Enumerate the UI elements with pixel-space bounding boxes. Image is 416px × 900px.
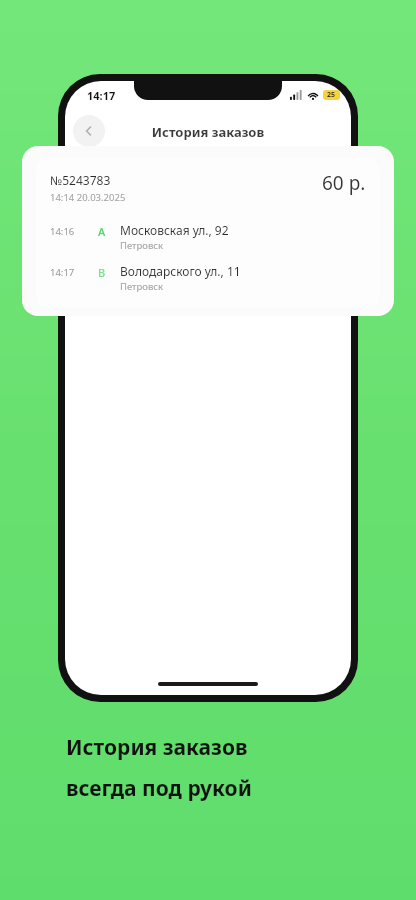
staticText: История заказов <box>65 123 351 141</box>
staticText: 14:14 20.03.2025 <box>50 191 126 204</box>
staticText: Петровск <box>120 239 164 252</box>
staticText: 14:17 <box>50 266 84 279</box>
staticText: B <box>98 265 112 280</box>
staticText: №5243783 <box>50 172 111 188</box>
staticText: 14:17 <box>87 88 116 103</box>
staticText: A <box>98 224 112 239</box>
staticText: 25 <box>327 90 336 100</box>
button[interactable]: 14:17 <box>50 263 366 293</box>
staticText: 60 p. <box>322 170 366 196</box>
staticText: 14:16 <box>50 225 84 238</box>
staticText: всегда под рукой <box>66 774 252 803</box>
staticText: История заказов <box>66 733 248 762</box>
button[interactable]: 14:16 <box>50 222 366 252</box>
staticText: Московская ул., 92 <box>120 222 229 238</box>
staticText: Петровск <box>120 280 164 293</box>
staticText: Володарского ул., 11 <box>120 263 241 279</box>
button[interactable]: №5243783 <box>36 158 380 308</box>
button[interactable]: Back <box>73 115 105 147</box>
